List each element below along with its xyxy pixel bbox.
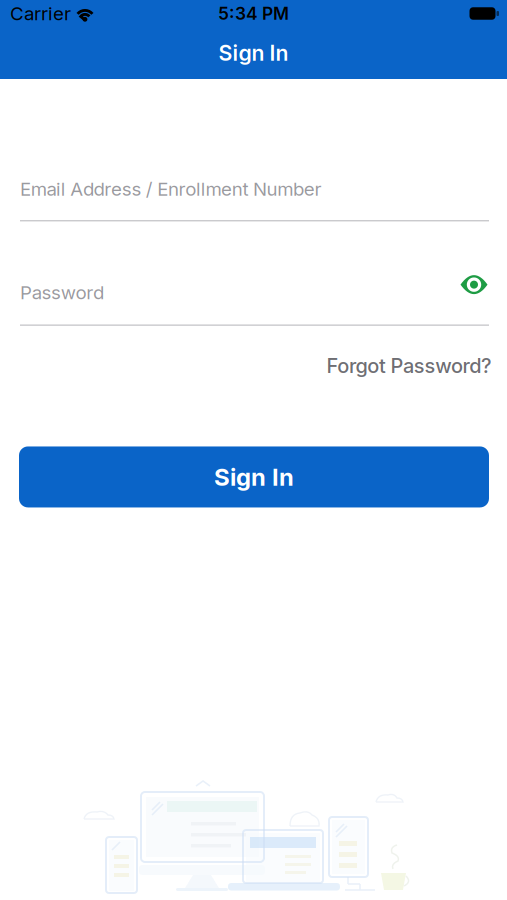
staticText: Email Address / Enrollment Number: [20, 178, 321, 200]
staticText: Sign In: [218, 40, 288, 66]
staticText: Password: [20, 281, 104, 303]
button[interactable]: Forgot Password?: [326, 354, 492, 377]
button[interactable]: Sign In: [0, 446, 507, 507]
staticText: 5:34 PM: [218, 3, 289, 24]
staticText: Carrier: [10, 2, 71, 24]
button[interactable]: Password: [0, 281, 507, 326]
button[interactable]: Email Address / Enrollment Number: [0, 178, 507, 221]
staticText: Forgot Password?: [326, 354, 492, 377]
staticText: Sign In: [214, 463, 294, 491]
button[interactable]: [457, 272, 491, 296]
